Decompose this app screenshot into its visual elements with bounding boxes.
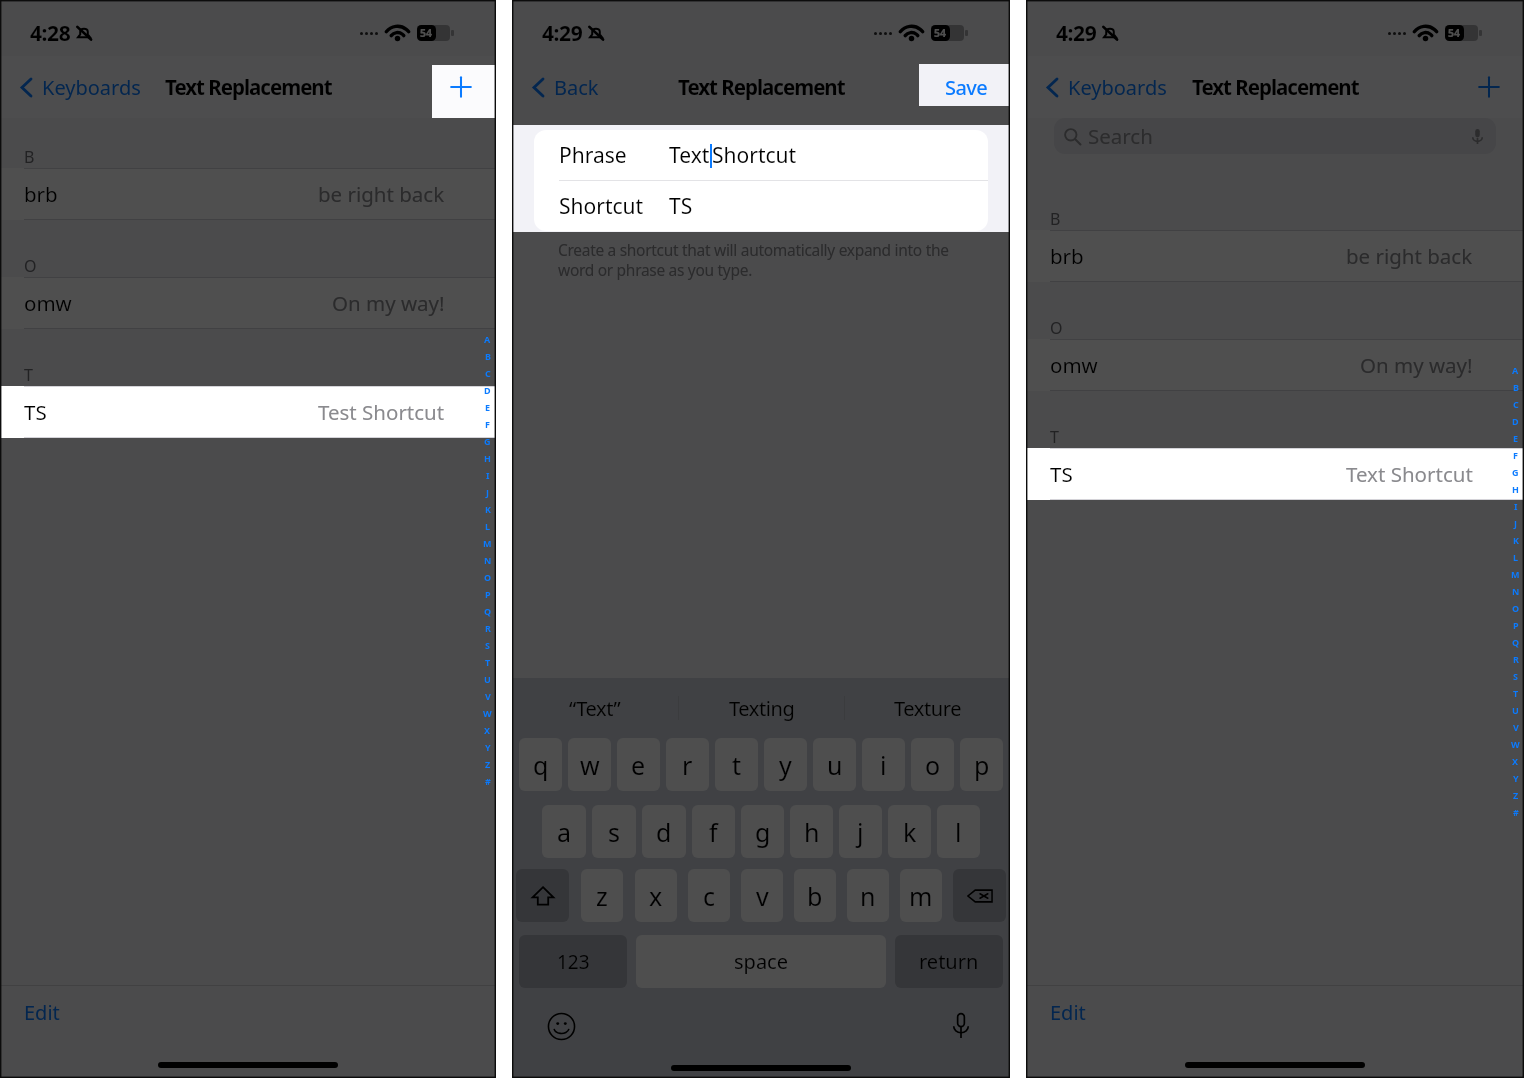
button[interactable]: y [764,738,807,791]
button[interactable]: Search [1054,118,1496,154]
button[interactable]: w [568,738,611,791]
button[interactable]: a [542,805,586,858]
button[interactable]: omw [1026,340,1524,390]
button[interactable]: C [1507,395,1524,412]
button[interactable]: d [642,805,686,858]
button[interactable]: g [741,805,784,858]
button[interactable]: V [479,687,496,704]
button[interactable]: I [1507,497,1524,514]
button[interactable]: N [479,551,496,568]
button[interactable]: space [636,935,886,988]
button[interactable]: Dictate [945,1010,977,1042]
button[interactable]: # [479,772,496,789]
button[interactable]: T [479,653,496,670]
button[interactable]: u [813,738,856,791]
button[interactable]: m [900,869,942,922]
button[interactable]: Keyboards [1040,74,1167,101]
button[interactable]: “Text” [512,678,678,738]
button[interactable]: J [1507,514,1524,531]
button[interactable]: TS [1026,449,1524,499]
button[interactable]: J [479,483,496,500]
button[interactable]: L [479,517,496,534]
button[interactable]: I [479,466,496,483]
button[interactable]: b [794,869,836,922]
button[interactable]: Texting [679,678,844,738]
button[interactable]: U [1507,701,1524,718]
button[interactable]: X [1507,752,1524,769]
button[interactable]: Delete [953,869,1006,922]
button[interactable]: B [1507,378,1524,395]
button[interactable]: O [479,568,496,585]
button[interactable]: Edit [1050,999,1086,1026]
button[interactable]: F [1507,446,1524,463]
button[interactable]: Z [479,755,496,772]
button[interactable]: brb [1026,231,1524,281]
button[interactable]: O [1507,599,1524,616]
button[interactable]: R [1507,650,1524,667]
button[interactable]: L [1507,548,1524,565]
button[interactable]: Back [526,74,599,101]
button[interactable]: D [1507,412,1524,429]
button[interactable]: D [479,381,496,398]
button[interactable]: G [1507,463,1524,480]
button[interactable]: Phrase [534,130,988,180]
button[interactable]: q [519,738,562,791]
button[interactable]: P [1507,616,1524,633]
button[interactable]: f [692,805,735,858]
button[interactable]: z [581,869,623,922]
button[interactable]: brb [0,169,496,219]
button[interactable]: A [1507,361,1524,378]
button[interactable]: e [617,738,660,791]
button[interactable]: P [479,585,496,602]
button[interactable]: H [479,449,496,466]
button[interactable]: Y [479,738,496,755]
button[interactable]: W [479,704,496,721]
button[interactable]: j [839,805,882,858]
button[interactable]: # [1507,803,1524,820]
button[interactable]: H [1507,480,1524,497]
button[interactable]: Y [1507,769,1524,786]
button[interactable]: B [479,347,496,364]
button[interactable]: Emoji [545,1010,577,1042]
button[interactable]: v [741,869,783,922]
button[interactable]: K [1507,531,1524,548]
button[interactable]: k [888,805,931,858]
button[interactable]: Shift [516,869,569,922]
button[interactable]: Shortcut [534,181,988,231]
button[interactable]: Q [1507,633,1524,650]
button[interactable]: Save [945,74,988,101]
button[interactable]: E [1507,429,1524,446]
button[interactable]: X [479,721,496,738]
button[interactable]: p [960,738,1003,791]
button[interactable]: U [479,670,496,687]
button[interactable]: TS [0,387,496,437]
button[interactable]: r [666,738,709,791]
button[interactable]: t [715,738,758,791]
button[interactable]: V [1507,718,1524,735]
button[interactable]: W [1507,735,1524,752]
button[interactable]: M [479,534,496,551]
button[interactable]: s [592,805,636,858]
button[interactable]: o [911,738,954,791]
button[interactable]: omw [0,278,496,328]
button[interactable]: C [479,364,496,381]
button[interactable]: Edit [24,999,60,1026]
button[interactable]: G [479,432,496,449]
button[interactable]: x [635,869,677,922]
button[interactable]: Keyboards [14,74,141,101]
button[interactable]: Voice search [1468,127,1487,146]
button[interactable]: N [1507,582,1524,599]
button[interactable]: E [479,398,496,415]
button[interactable]: 123 [519,935,627,988]
button[interactable]: Texture [845,678,1010,738]
button[interactable]: A [479,330,496,347]
button[interactable]: S [479,636,496,653]
button[interactable]: Q [479,602,496,619]
button[interactable]: T [1507,684,1524,701]
button[interactable]: l [937,805,980,858]
button[interactable]: F [479,415,496,432]
button[interactable]: S [1507,667,1524,684]
button[interactable]: Z [1507,786,1524,803]
button[interactable]: n [847,869,889,922]
button[interactable]: M [1507,565,1524,582]
